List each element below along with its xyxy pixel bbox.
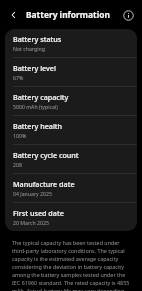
button[interactable]: Back [6,7,22,23]
staticText: 20 March 2025 [13,219,49,226]
staticText: Battery level [13,63,56,73]
staticText: Battery health [13,121,63,131]
staticText: Manufacture date [13,179,75,189]
staticText: 208 [13,161,22,168]
button[interactable]: About battery information [120,7,136,23]
staticText: 67% [13,74,24,81]
staticText: 04 January 2025 [13,190,52,197]
button[interactable]: Battery cycle count [5,144,137,173]
staticText: 5000 mAh (typical) [13,103,58,110]
button[interactable]: Battery status [5,29,137,57]
staticText: Battery status [13,34,62,44]
staticText: Battery information [26,9,110,20]
button[interactable]: Manufacture date [5,173,137,202]
staticText: Battery cycle count [13,150,79,160]
staticText: Not charging [13,45,45,52]
button[interactable]: Battery capacity [5,86,137,115]
button[interactable]: Battery health [5,115,137,144]
button[interactable]: Battery level [5,57,137,86]
staticText: First used date [13,208,64,218]
staticText: 100% [13,132,27,139]
staticText: The typical capacity has been tested und… [12,239,132,291]
staticText: Battery capacity [13,92,69,102]
button[interactable]: First used date [5,202,137,231]
